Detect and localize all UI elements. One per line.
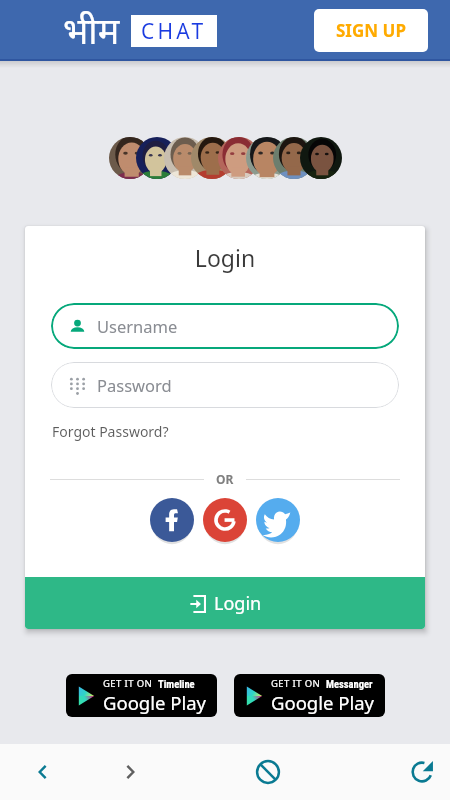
staticText: GET IT ON — [271, 677, 321, 690]
button[interactable]: GET IT ON — [66, 674, 217, 717]
staticText: Forgot Password? — [52, 422, 169, 441]
button[interactable]: Login — [25, 577, 425, 629]
button[interactable]: Username — [51, 303, 399, 349]
button[interactable]: Twitter — [256, 498, 300, 542]
button[interactable]: Password — [51, 362, 399, 408]
button[interactable]: User avatar — [273, 137, 315, 179]
button[interactable]: User avatar — [191, 137, 233, 179]
staticText: OR — [216, 471, 234, 487]
button[interactable]: User avatar — [136, 137, 178, 179]
button[interactable]: Stop — [225, 744, 311, 800]
staticText: Login — [25, 242, 425, 273]
button[interactable]: SIGN UP — [314, 9, 428, 52]
staticText: Login — [214, 591, 262, 616]
staticText: Timeline — [158, 678, 195, 690]
staticText: Password — [97, 374, 172, 396]
button[interactable]: GET IT ON — [234, 674, 385, 717]
staticText: Google Play — [103, 690, 207, 715]
button[interactable]: Forward — [86, 744, 174, 800]
staticText: CHAT — [141, 17, 207, 46]
button[interactable]: User avatar — [300, 137, 342, 179]
button[interactable]: User avatar — [246, 137, 288, 179]
button[interactable]: Refresh — [393, 744, 450, 800]
staticText: Username — [97, 315, 178, 337]
staticText: Messanger — [326, 678, 373, 690]
staticText: Google Play — [271, 690, 375, 715]
button[interactable]: Back — [0, 744, 86, 800]
button[interactable]: User avatar — [109, 137, 151, 179]
button[interactable]: Google — [203, 498, 247, 542]
button[interactable]: User avatar — [218, 137, 260, 179]
button[interactable]: User avatar — [164, 137, 206, 179]
button[interactable]: Facebook — [150, 498, 194, 542]
staticText: भीम — [63, 6, 120, 55]
staticText: SIGN UP — [336, 19, 406, 42]
staticText: GET IT ON — [103, 677, 153, 690]
